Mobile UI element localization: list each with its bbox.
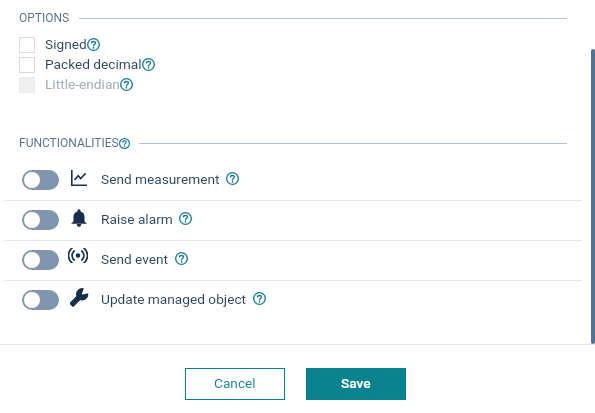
staticText: FUNCTIONALITIES [19, 136, 119, 150]
staticText: Update managed object [101, 291, 247, 307]
button[interactable]: Little-endian [19, 75, 133, 95]
button[interactable]: Toggle Raise alarm [0, 201, 595, 240]
button[interactable]: Signed [19, 35, 100, 55]
staticText: Little-endian [45, 76, 120, 92]
button[interactable]: Save [306, 368, 406, 400]
button[interactable]: Cancel [185, 368, 285, 400]
staticText: OPTIONS [19, 11, 70, 25]
staticText: Send measurement [101, 171, 220, 187]
button[interactable]: Toggle Send measurement [0, 161, 595, 200]
other: Toggle Raise alarm [22, 210, 59, 230]
other: Toggle Send measurement [22, 170, 59, 190]
staticText: Packed decimal [45, 56, 142, 72]
button[interactable]: Toggle Update managed object [0, 281, 595, 320]
other: Toggle Update managed object [22, 290, 59, 310]
staticText: Send event [101, 251, 169, 267]
staticText: Signed [45, 36, 87, 52]
staticText: Raise alarm [101, 211, 173, 227]
button[interactable]: Packed decimal [19, 55, 155, 75]
button[interactable]: Toggle Send event [0, 241, 595, 280]
staticText: Cancel [214, 375, 256, 391]
other: Toggle Send event [22, 250, 59, 270]
staticText: Save [341, 375, 371, 391]
